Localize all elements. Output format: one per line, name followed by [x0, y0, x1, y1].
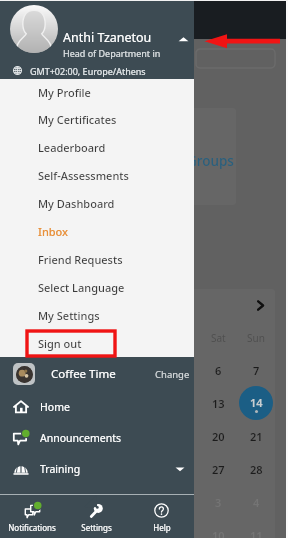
button[interactable]: My Settings [0, 301, 194, 329]
staticText: 6 [215, 363, 222, 378]
staticText: Head of Department in [63, 47, 161, 59]
button[interactable]: Sign out [0, 329, 194, 357]
staticText: Announcements [40, 431, 122, 445]
other: Settings [89, 503, 104, 518]
staticText: 28 [250, 462, 263, 477]
button[interactable]: Settings [64, 495, 129, 538]
staticText: Change [155, 368, 190, 381]
staticText: Inbox [38, 224, 69, 239]
button[interactable]: Anthi Tzanetou [0, 0, 194, 79]
other: Expand [175, 464, 185, 474]
staticText: Sun [247, 331, 265, 345]
staticText: My Profile [38, 85, 91, 100]
staticText: My Settings [38, 308, 100, 323]
button[interactable]: Select Language [0, 273, 194, 301]
staticText: Sign out [38, 336, 82, 351]
staticText: 13 [212, 396, 225, 411]
staticText: Select Language [38, 280, 125, 295]
staticText: 21 [250, 429, 263, 444]
button[interactable]: Inbox [0, 217, 194, 245]
button[interactable]: Coffee Time [0, 357, 194, 391]
staticText: Home [40, 400, 70, 414]
button[interactable]: Home [0, 391, 194, 422]
staticText: 4 [253, 495, 260, 510]
button[interactable]: Announcements [0, 422, 194, 453]
other: Collapse [178, 34, 189, 45]
button[interactable]: Notifications [0, 495, 64, 538]
staticText: Training [40, 462, 81, 476]
staticText: Notifications [8, 522, 56, 533]
staticText: Anthi Tzanetou [63, 29, 152, 46]
staticText: 11 [250, 528, 263, 538]
staticText: Self-Assessments [38, 168, 129, 183]
staticText: Help [153, 522, 171, 533]
staticText: 7 [253, 363, 260, 378]
staticText: My Dashboard [38, 196, 115, 211]
button[interactable]: Help [129, 495, 194, 538]
staticText: 10 [212, 528, 225, 538]
staticText: 14 [250, 395, 263, 410]
staticText: My Certificates [38, 112, 117, 127]
staticText: Settings [81, 522, 112, 533]
staticText: Coffee Time [51, 366, 116, 382]
staticText: Groups [187, 152, 234, 170]
staticText: Friend Requests [38, 252, 123, 267]
button[interactable]: My Profile [0, 79, 194, 106]
button[interactable]: Friend Requests [0, 245, 194, 273]
staticText: Leaderboard [38, 140, 106, 155]
button[interactable]: My Certificates [0, 106, 194, 133]
button[interactable]: Leaderboard [0, 133, 194, 161]
button[interactable]: My Dashboard [0, 189, 194, 217]
button[interactable]: Self-Assessments [0, 161, 194, 189]
staticText: Sat [211, 331, 226, 345]
staticText: GMT+02:00, Europe/Athens [30, 65, 146, 77]
staticText: 27 [212, 462, 225, 477]
other: Notifications [25, 503, 40, 518]
staticText: 20 [212, 429, 225, 444]
other: Help [154, 503, 169, 518]
staticText: 3 [215, 495, 222, 510]
button[interactable]: Training [0, 453, 194, 484]
